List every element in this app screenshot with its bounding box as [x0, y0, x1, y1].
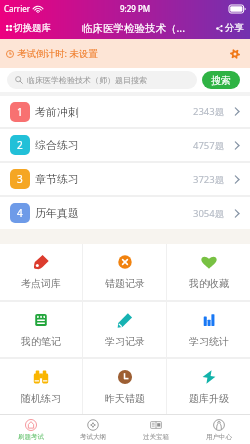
button[interactable]: 3: [0, 163, 250, 195]
button[interactable]: 搜索: [202, 71, 240, 89]
button[interactable]: 题库升级: [167, 359, 250, 414]
staticText: 考前冲刺: [35, 105, 79, 119]
staticText: 9:29 PM: [120, 3, 151, 14]
staticText: 2: [17, 138, 23, 152]
staticText: 搜索: [211, 74, 231, 87]
staticText: 刷题考试: [18, 433, 44, 441]
button[interactable]: 4: [0, 197, 250, 229]
staticText: 错题记录: [105, 277, 145, 290]
staticText: 过关宝箱: [143, 433, 169, 441]
staticText: 临床医学检验技术（...: [82, 21, 185, 35]
staticText: 4757题: [193, 139, 225, 152]
staticText: Carrier: [4, 3, 31, 14]
staticText: 临床医学检验技术（师）题目搜索: [27, 75, 147, 85]
button[interactable]: 我的收藏: [167, 244, 250, 300]
button[interactable]: 用户中心: [187, 415, 250, 444]
staticText: 学习记录: [105, 335, 145, 348]
button[interactable]: 错题记录: [83, 244, 166, 300]
staticText: 1: [17, 105, 23, 119]
staticText: 学习统计: [189, 335, 229, 348]
staticText: 4: [17, 206, 23, 220]
button[interactable]: 我的笔记: [0, 302, 82, 357]
button[interactable]: 随机练习: [0, 359, 82, 414]
staticText: 昨天错题: [105, 392, 145, 405]
staticText: 综合练习: [35, 138, 79, 152]
staticText: 考试倒计时: 未设置: [17, 47, 99, 60]
staticText: 考点词库: [21, 277, 61, 290]
button[interactable]: 昨天错题: [83, 359, 166, 414]
staticText: 3723题: [193, 173, 225, 186]
staticText: 3054题: [193, 207, 225, 220]
button[interactable]: 考试大纲: [62, 415, 124, 444]
button[interactable]: 临床医学检验技术（师）题目搜索: [7, 71, 197, 89]
button[interactable]: 2: [0, 129, 250, 161]
button[interactable]: 设置: [226, 45, 244, 63]
button[interactable]: 切换题库: [0, 17, 57, 39]
staticText: 我的收藏: [189, 277, 229, 290]
button[interactable]: 分享: [210, 17, 250, 39]
staticText: 我的笔记: [21, 335, 61, 348]
staticText: 章节练习: [35, 172, 79, 186]
staticText: 随机练习: [21, 392, 61, 405]
staticText: 3: [17, 172, 23, 186]
staticText: 2343题: [193, 105, 225, 118]
button[interactable]: 1: [0, 96, 250, 127]
button[interactable]: 考点词库: [0, 244, 82, 300]
button[interactable]: 学习记录: [83, 302, 166, 357]
staticText: 切换题库: [13, 22, 51, 34]
button[interactable]: 学习统计: [167, 302, 250, 357]
button[interactable]: 过关宝箱: [124, 415, 187, 444]
staticText: 历年真题: [35, 206, 79, 220]
staticText: 分享: [225, 22, 244, 34]
staticText: 考试大纲: [80, 433, 106, 441]
button[interactable]: 刷题考试: [0, 415, 62, 444]
staticText: 题库升级: [189, 392, 229, 405]
staticText: 用户中心: [206, 433, 232, 441]
